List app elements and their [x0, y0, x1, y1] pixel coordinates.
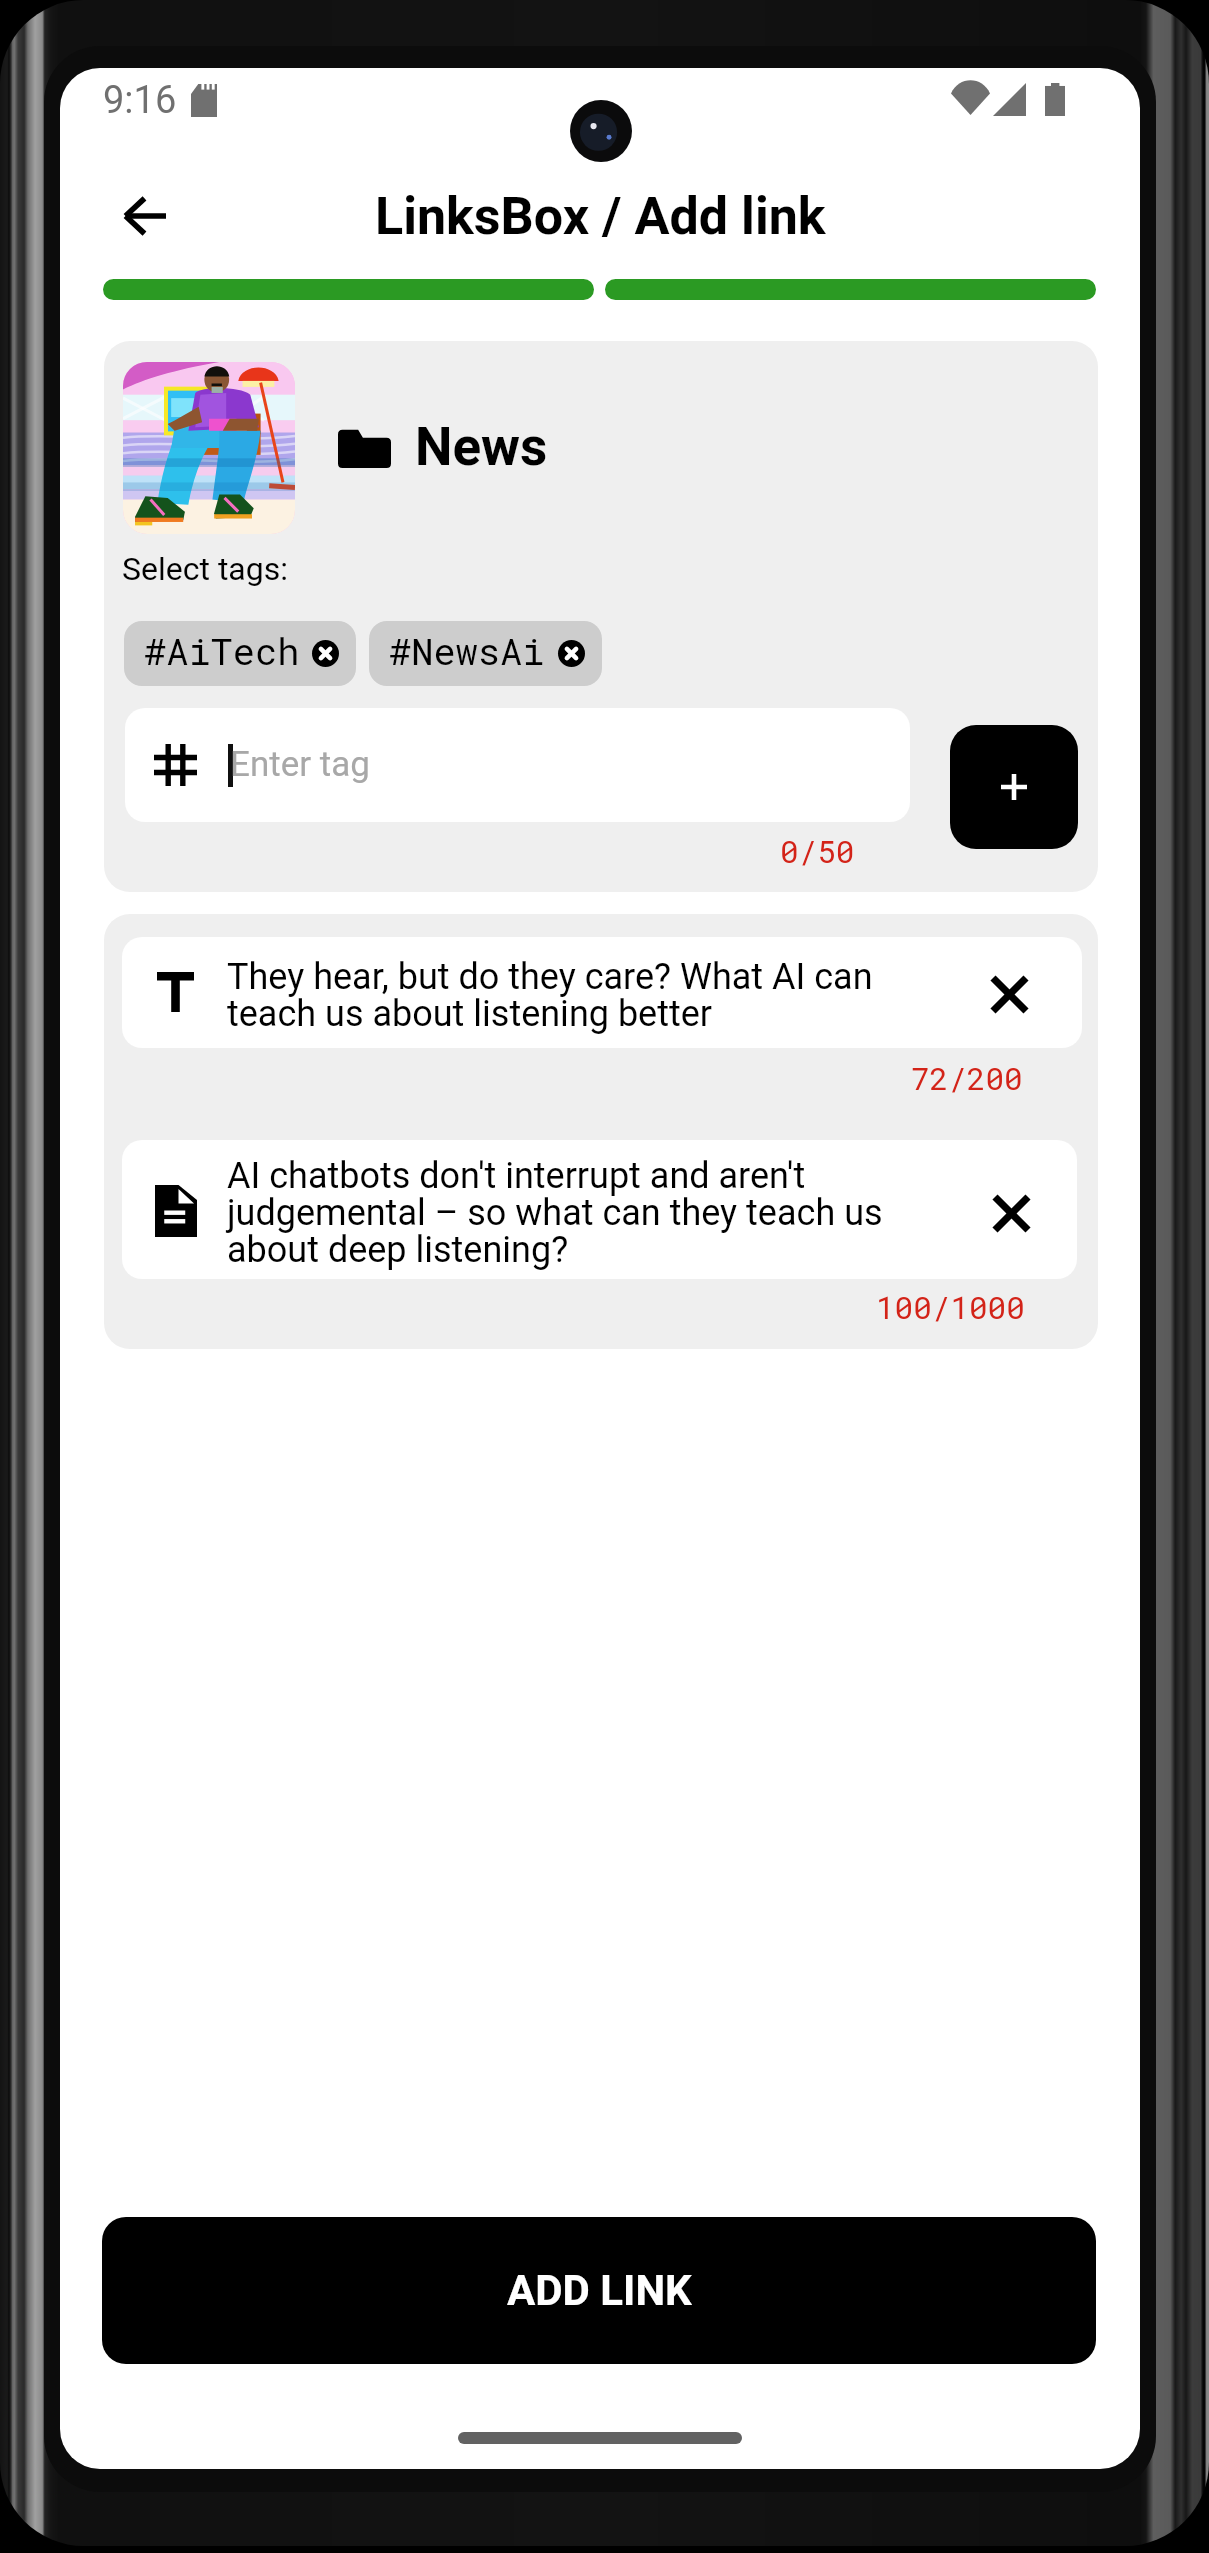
staticText: They hear, but do they care? What AI can…: [227, 956, 927, 1035]
staticText: ADD LINK: [507, 2266, 692, 2315]
staticText: Enter tag: [230, 744, 370, 785]
button[interactable]: Clear title: [976, 961, 1043, 1028]
staticText: News: [415, 416, 548, 478]
button[interactable]: Add tag: [950, 725, 1078, 849]
staticText: LinksBox / Add link: [375, 186, 826, 247]
staticText: 100/1000: [876, 1287, 1025, 1328]
button[interactable]: AI chatbots don't interrupt and aren't j…: [122, 1140, 1077, 1279]
button[interactable]: ADD LINK: [102, 2217, 1096, 2364]
button[interactable]: #NewsAi: [369, 621, 602, 686]
button[interactable]: Back: [103, 175, 186, 257]
button[interactable]: Clear description: [978, 1180, 1045, 1247]
button[interactable]: They hear, but do they care? What AI can…: [122, 937, 1082, 1048]
staticText: Select tags:: [122, 550, 288, 588]
staticText: 9:16: [103, 78, 177, 123]
button[interactable]: Enter tag: [125, 708, 910, 822]
staticText: 72/200: [911, 1058, 1023, 1099]
staticText: #NewsAi: [389, 626, 545, 675]
staticText: #AiTech: [144, 626, 300, 675]
staticText: 0/50: [780, 831, 855, 872]
button[interactable]: #AiTech: [124, 621, 356, 686]
staticText: AI chatbots don't interrupt and aren't j…: [227, 1155, 927, 1271]
